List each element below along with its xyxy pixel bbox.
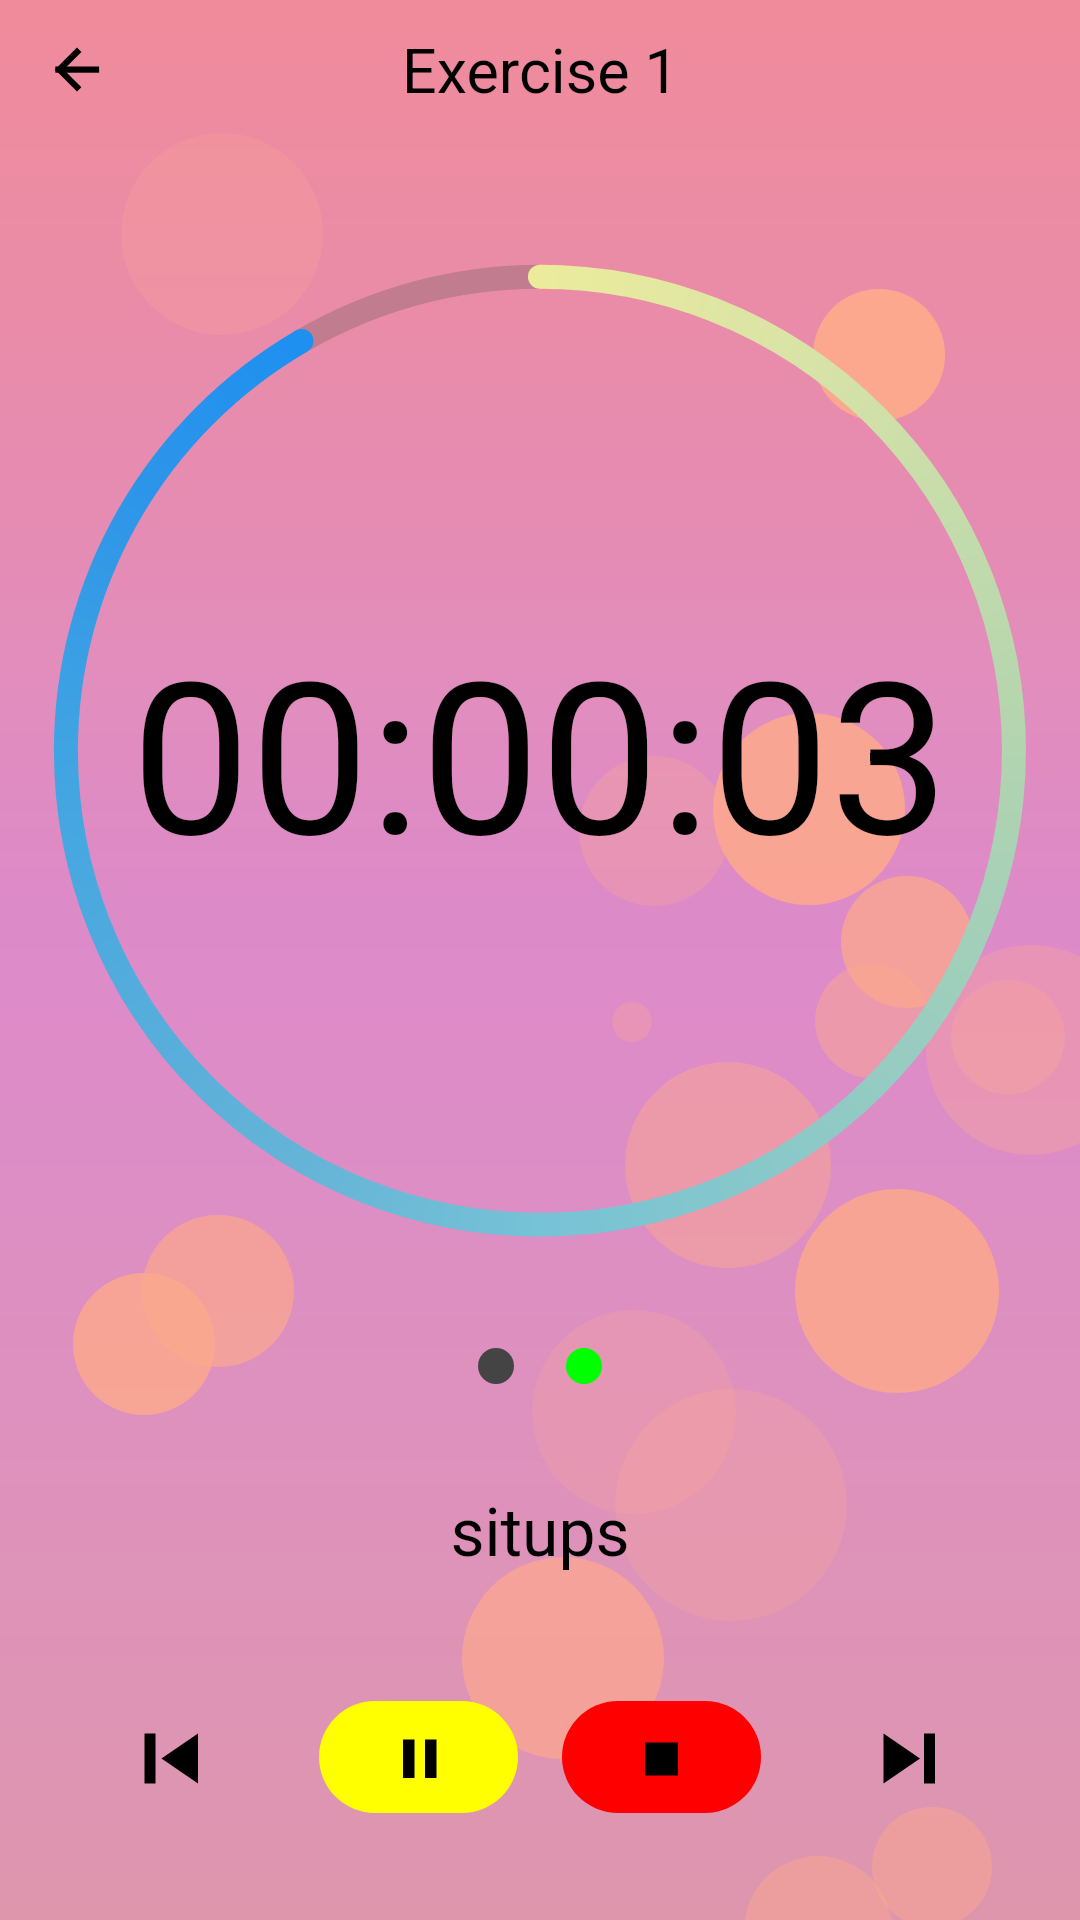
staticText: 00:00:03 bbox=[131, 637, 949, 885]
button[interactable]: Pause bbox=[319, 1701, 518, 1813]
button[interactable]: Next exercise bbox=[860, 1708, 958, 1806]
staticText: Exercise 1 bbox=[402, 36, 679, 107]
staticText: situps bbox=[450, 1495, 630, 1572]
button[interactable]: Back bbox=[28, 21, 126, 119]
button[interactable]: Previous exercise bbox=[122, 1708, 220, 1806]
button[interactable]: Stop bbox=[562, 1701, 761, 1813]
